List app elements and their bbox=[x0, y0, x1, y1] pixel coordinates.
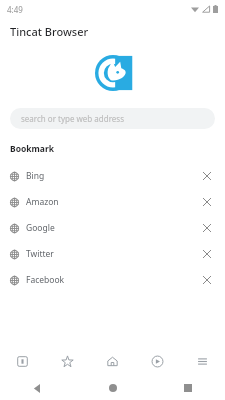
staticText: Google bbox=[26, 222, 55, 234]
button[interactable]: Home bbox=[75, 376, 150, 400]
button[interactable]: Google bbox=[0, 215, 225, 241]
staticText: Bing bbox=[26, 170, 45, 182]
button[interactable]: Remove Bing bbox=[195, 164, 219, 188]
staticText: Twitter bbox=[26, 248, 54, 260]
staticText: Facebook bbox=[26, 274, 65, 286]
button[interactable]: Home bbox=[90, 346, 135, 376]
staticText: Tincat Browser bbox=[10, 24, 89, 39]
button[interactable]: search or type web address bbox=[10, 108, 215, 129]
button[interactable]: Remove Amazon bbox=[195, 190, 219, 214]
button[interactable]: Amazon bbox=[0, 189, 225, 215]
button[interactable]: Recents bbox=[150, 376, 225, 400]
button[interactable]: Twitter bbox=[0, 241, 225, 267]
button[interactable]: Tabs bbox=[0, 346, 45, 376]
button[interactable]: Facebook bbox=[0, 267, 225, 293]
button[interactable]: Remove Facebook bbox=[195, 268, 219, 292]
button[interactable]: Bing bbox=[0, 163, 225, 189]
staticText: 4:49 bbox=[7, 4, 23, 15]
button[interactable]: Remove Twitter bbox=[195, 242, 219, 266]
staticText: search or type web address bbox=[21, 113, 124, 124]
button[interactable]: Back bbox=[0, 376, 75, 400]
button[interactable]: Remove Google bbox=[195, 216, 219, 240]
staticText: Bookmark bbox=[10, 143, 54, 155]
button[interactable]: Bookmarks bbox=[45, 346, 90, 376]
button[interactable]: Menu bbox=[180, 346, 225, 376]
staticText: Amazon bbox=[26, 196, 59, 208]
button[interactable]: Media bbox=[135, 346, 180, 376]
